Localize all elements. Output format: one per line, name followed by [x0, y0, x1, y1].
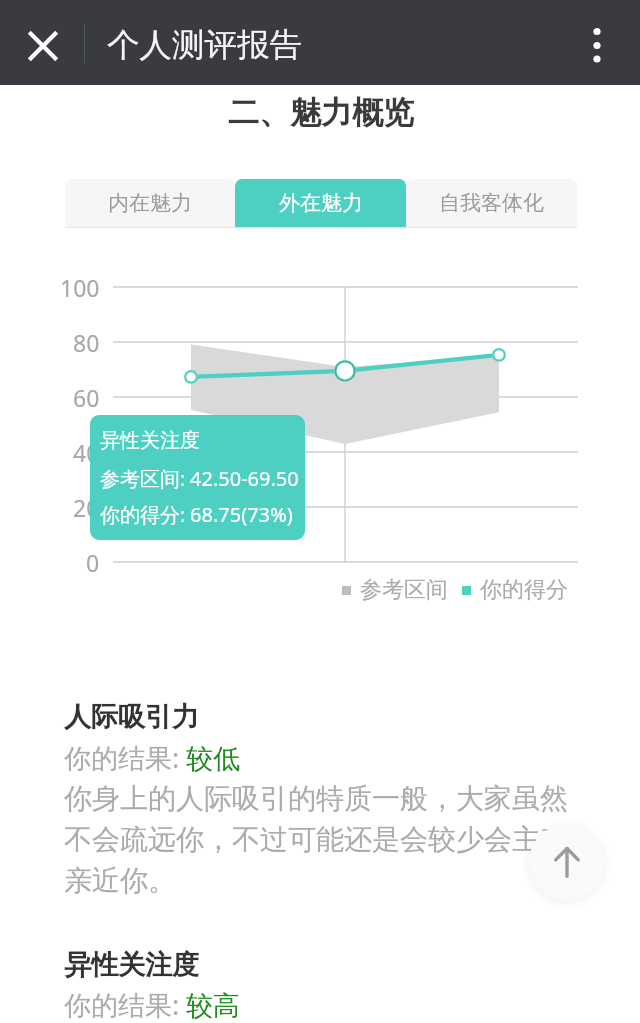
- staticText: 你的结果: 较高: [64, 986, 240, 1023]
- button[interactable]: 外在魅力: [235, 179, 406, 227]
- button[interactable]: Scroll to top: [529, 824, 605, 900]
- staticText: 人际吸引力: [64, 700, 199, 734]
- staticText: 0: [86, 547, 100, 578]
- staticText: 60: [73, 382, 100, 413]
- staticText: 自我客体化: [439, 190, 544, 216]
- staticText: 你身上的人际吸引的特质一般，大家虽然 不会疏远你，不过可能还是会较少会主动 亲近…: [64, 781, 584, 898]
- staticText: 你的得分: [480, 576, 568, 604]
- button[interactable]: More options: [571, 19, 623, 71]
- button[interactable]: 自我客体化: [406, 179, 577, 227]
- staticText: 你的得分: 68.75(73%): [100, 501, 293, 528]
- staticText: 参考区间: 42.50-69.50: [100, 465, 299, 492]
- staticText: 40: [73, 437, 100, 468]
- button[interactable]: 内在魅力: [65, 179, 235, 227]
- staticText: 外在魅力: [279, 190, 363, 216]
- staticText: 异性关注度: [100, 428, 200, 453]
- staticText: 个人测评报告: [107, 25, 302, 66]
- staticText: 二、魅力概览: [228, 93, 414, 132]
- staticText: 80: [73, 327, 100, 358]
- staticText: 你的结果: 较低: [64, 739, 240, 776]
- staticText: 内在魅力: [108, 190, 192, 216]
- staticText: 异性关注度: [64, 948, 199, 982]
- button[interactable]: Close: [15, 18, 71, 74]
- staticText: 参考区间: [360, 576, 448, 604]
- staticText: 100: [60, 272, 100, 303]
- staticText: 20: [73, 492, 100, 523]
